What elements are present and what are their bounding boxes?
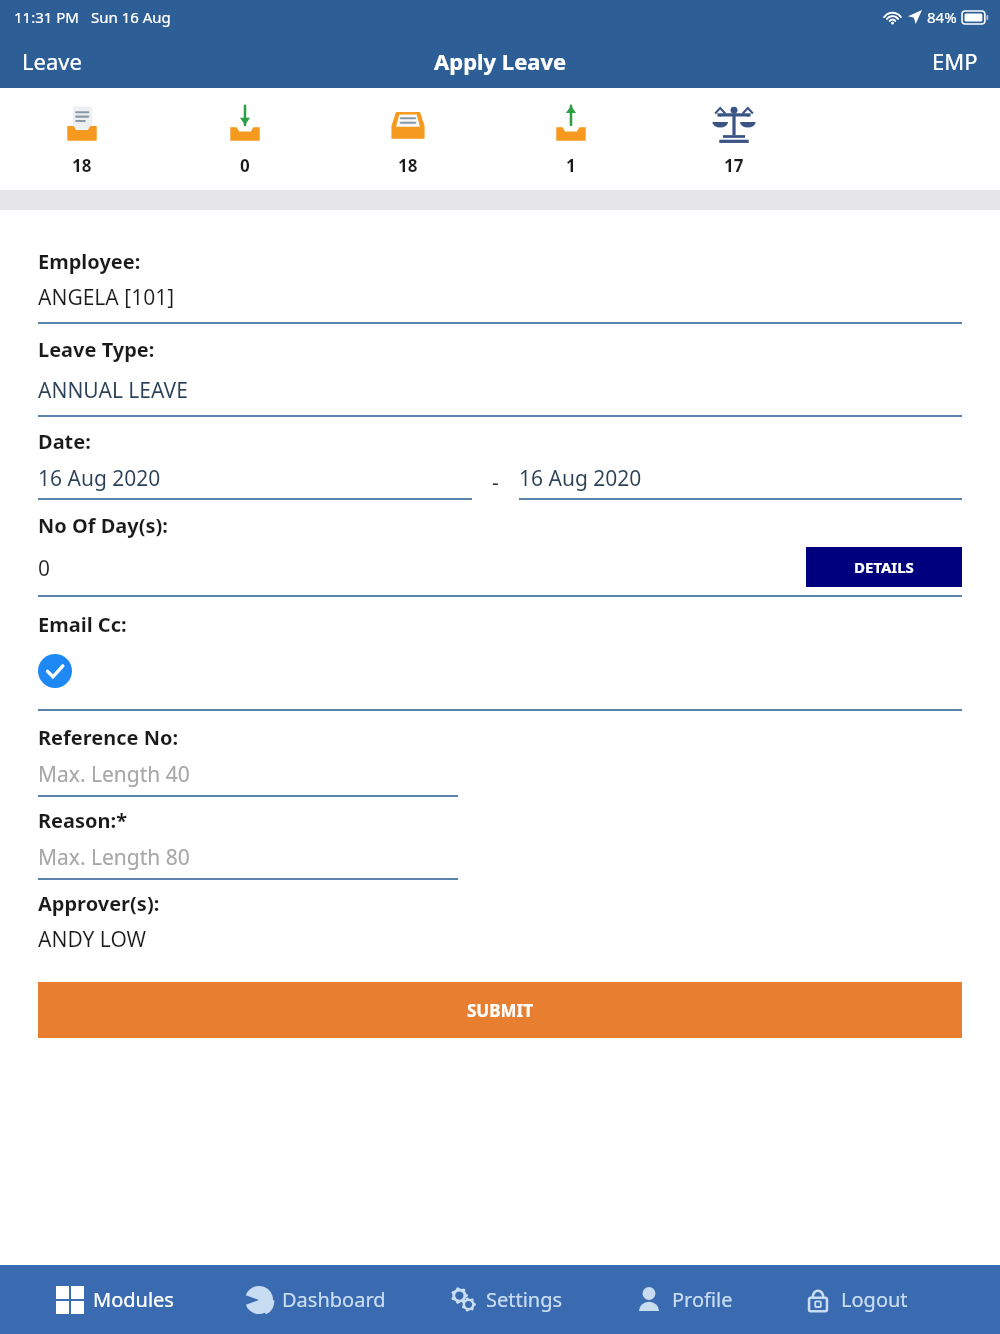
button[interactable]: Incoming xyxy=(163,88,326,190)
staticText: Reference No: xyxy=(38,724,179,751)
button[interactable]: ANNUAL LEAVE xyxy=(38,376,962,405)
staticText: 16 Aug 2020 xyxy=(38,464,161,493)
staticText: 1 xyxy=(566,154,576,177)
button[interactable]: Max. Length 80 xyxy=(38,843,458,880)
staticText: ANNUAL LEAVE xyxy=(38,376,188,405)
staticText: 18 xyxy=(398,154,418,177)
staticText: Approver(s): xyxy=(38,890,160,917)
staticText: No Of Day(s): xyxy=(38,512,168,539)
staticText: Logout xyxy=(841,1286,908,1313)
staticText: Settings xyxy=(486,1286,563,1313)
staticText: - xyxy=(492,468,499,497)
button[interactable]: Profile xyxy=(635,1265,804,1334)
staticText: 18 xyxy=(72,154,92,177)
staticText: Employee: xyxy=(38,248,141,275)
staticText: Sun 16 Aug xyxy=(91,7,171,27)
staticText: SUBMIT xyxy=(467,999,533,1022)
staticText: EMP xyxy=(932,46,978,76)
staticText: 0 xyxy=(240,154,250,177)
button[interactable]: Leave xyxy=(0,36,104,86)
staticText: Modules xyxy=(93,1286,174,1313)
button[interactable]: 16 Aug 2020 xyxy=(519,464,962,500)
button[interactable]: SUBMIT xyxy=(38,982,962,1038)
button[interactable]: Total leave xyxy=(0,88,163,190)
staticText: 16 Aug 2020 xyxy=(519,464,642,493)
staticText: Apply Leave xyxy=(434,46,567,76)
button[interactable]: Email Cc enabled xyxy=(38,654,72,688)
staticText: 84% xyxy=(927,7,957,27)
staticText: Date: xyxy=(38,428,91,455)
staticText: Max. Length 80 xyxy=(38,843,190,872)
button[interactable]: Max. Length 40 xyxy=(38,760,458,797)
button[interactable]: Inbox xyxy=(326,88,489,190)
button[interactable]: Modules xyxy=(56,1265,245,1334)
button[interactable]: EMP xyxy=(910,36,1000,86)
staticText: Dashboard xyxy=(282,1286,386,1313)
staticText: 0 xyxy=(38,554,51,583)
staticText: Leave Type: xyxy=(38,336,155,363)
button[interactable]: Outgoing xyxy=(489,88,652,190)
staticText: Email Cc: xyxy=(38,611,127,638)
staticText: ANDY LOW xyxy=(38,925,147,954)
staticText: Max. Length 40 xyxy=(38,760,190,789)
button[interactable]: Settings xyxy=(449,1265,635,1334)
staticText: Profile xyxy=(672,1286,733,1313)
staticText: ANGELA [101] xyxy=(38,283,175,312)
button[interactable]: 16 Aug 2020 xyxy=(38,464,472,500)
button[interactable]: Balance xyxy=(652,88,815,190)
button[interactable]: DETAILS xyxy=(806,547,962,587)
staticText: DETAILS xyxy=(854,557,914,577)
staticText: Reason:* xyxy=(38,807,128,834)
staticText: 17 xyxy=(724,154,744,177)
staticText: 11:31 PM xyxy=(14,7,79,27)
staticText: Leave xyxy=(22,46,82,76)
button[interactable]: Logout xyxy=(804,1265,960,1334)
button[interactable]: Dashboard xyxy=(245,1265,449,1334)
